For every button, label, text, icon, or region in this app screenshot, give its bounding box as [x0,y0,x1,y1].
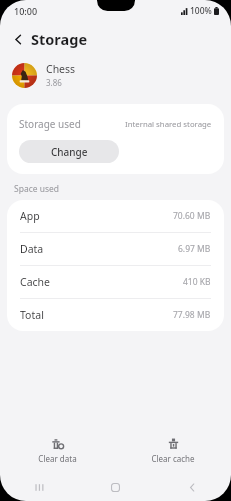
button[interactable]: Change [19,140,119,163]
button[interactable]: Clear data [0,428,115,473]
staticText: Storage [31,29,88,49]
staticText: Data [20,242,44,256]
button[interactable]: Back [7,28,29,50]
staticText: 77.98 MB [173,309,211,321]
other: Clear data [51,437,64,450]
button[interactable]: Cache [7,266,224,298]
staticText: Space used [14,183,60,195]
button[interactable]: Chess [0,56,231,94]
button[interactable]: Data [7,233,224,265]
staticText: Clear cache [151,453,195,464]
button[interactable]: Total [7,299,224,331]
staticText: Cache [20,275,50,289]
staticText: Clear data [38,453,77,464]
button[interactable]: Recents [0,473,77,501]
other: Clear cache [167,437,180,450]
staticText: Change [51,145,88,159]
staticText: Chess [46,62,76,76]
staticText: Storage used [19,117,81,131]
staticText: 100% [190,5,212,17]
staticText: App [20,209,40,223]
staticText: 6.97 MB [178,243,211,255]
button[interactable]: Back [154,473,231,501]
button[interactable]: App [7,200,224,232]
staticText: 70.60 MB [173,210,211,222]
button[interactable]: Home [77,473,154,501]
button[interactable]: Clear cache [115,428,231,473]
staticText: 3.86 [46,77,62,88]
staticText: 10:00 [14,5,38,17]
staticText: Total [20,308,44,322]
staticText: Internal shared storage [125,119,212,130]
staticText: 410 KB [183,276,211,288]
